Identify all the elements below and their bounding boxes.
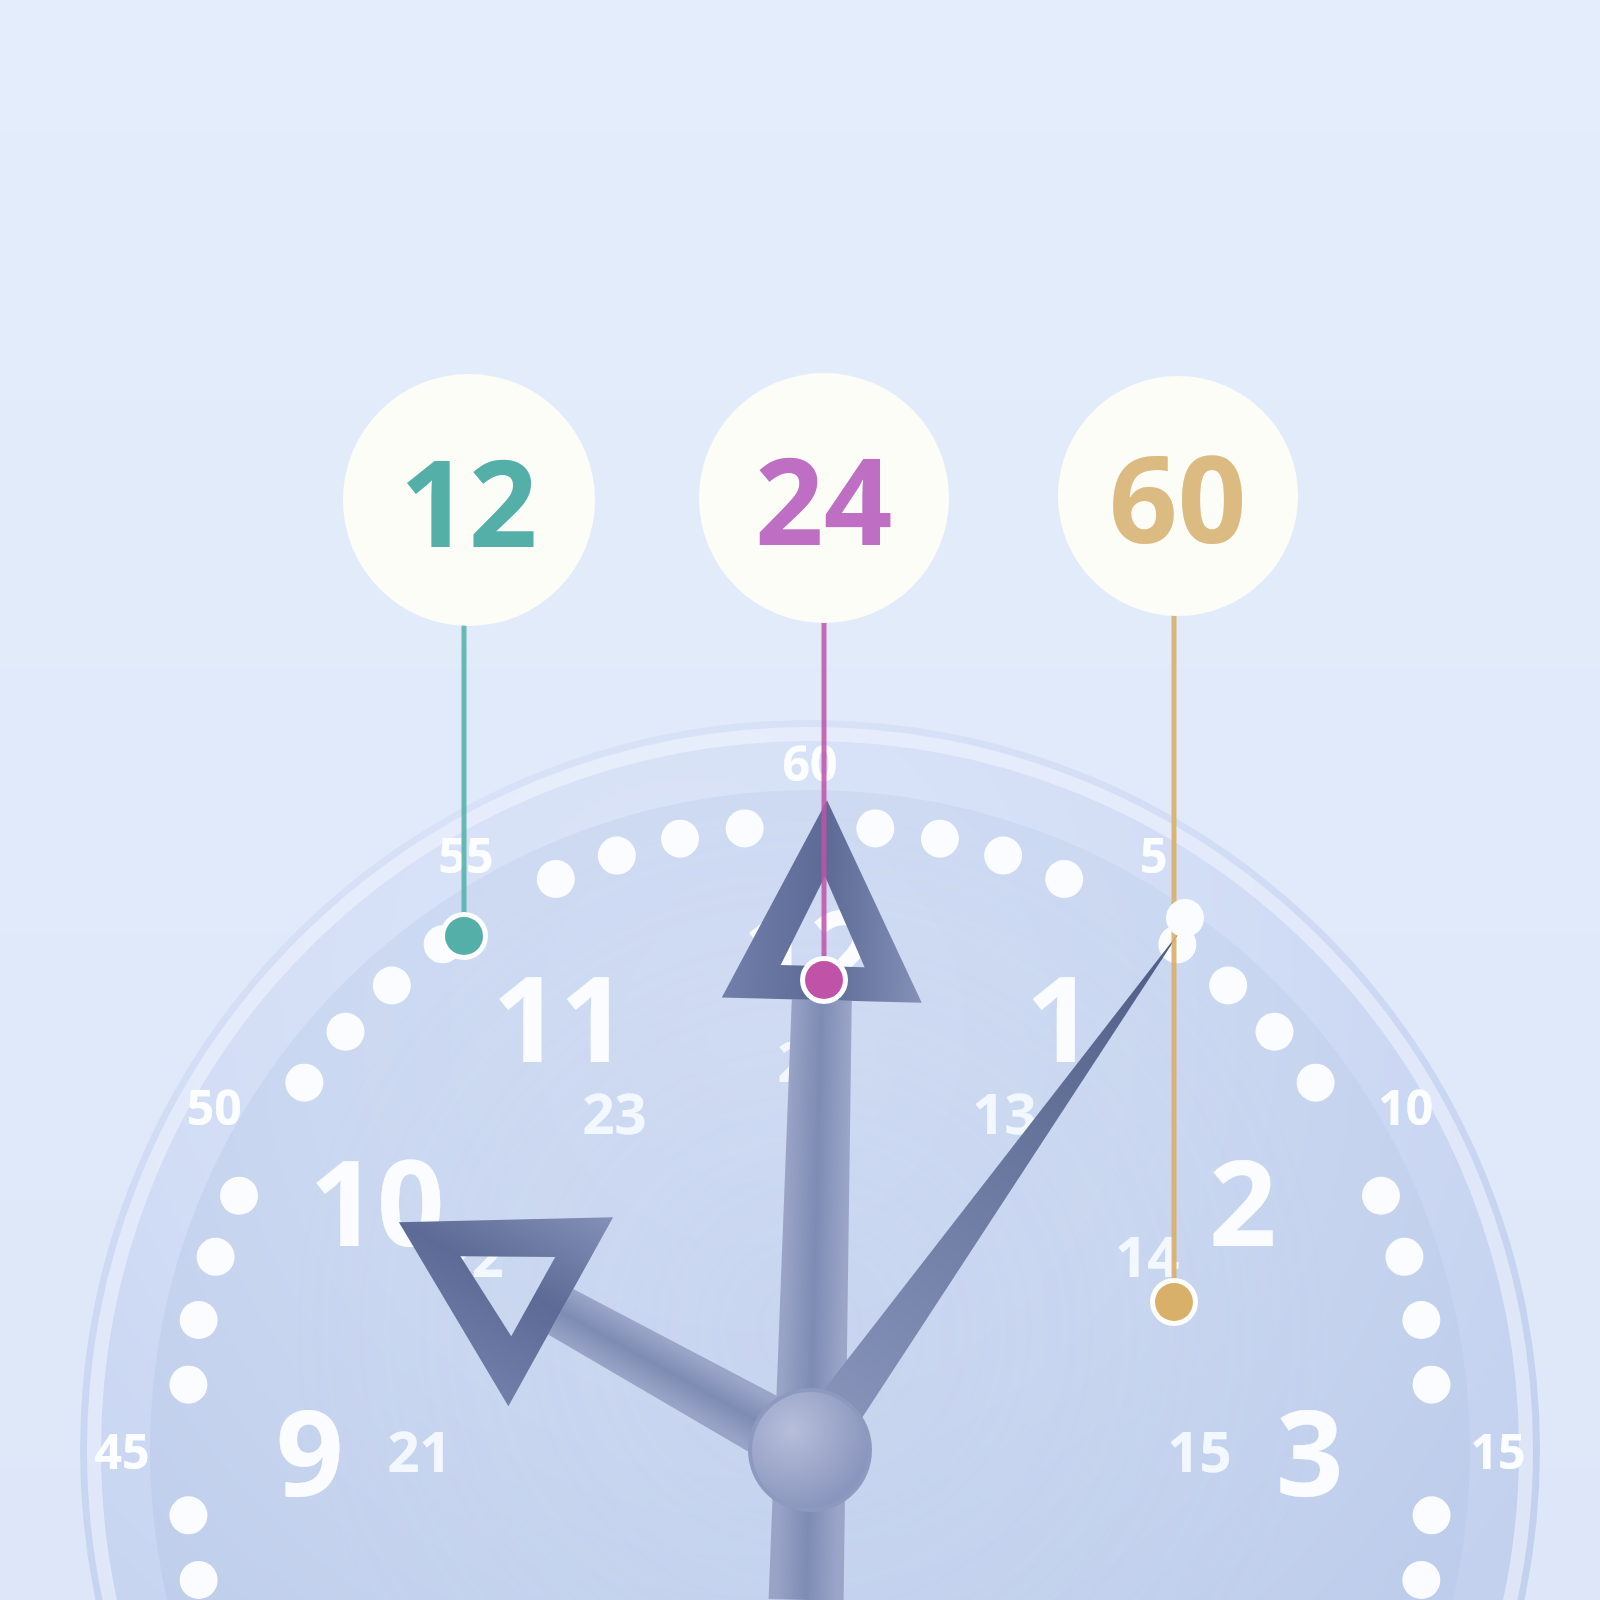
button[interactable]: Analog clock diagram [0, 0, 1600, 1600]
